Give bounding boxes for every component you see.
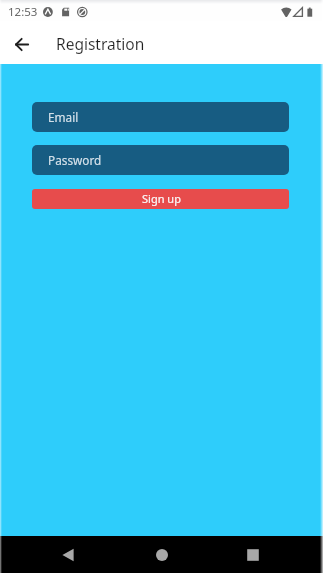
button[interactable]: Home	[146, 539, 178, 571]
staticText: Registration	[56, 33, 145, 54]
staticText: Email	[48, 109, 79, 125]
button[interactable]: Password	[32, 145, 289, 175]
button[interactable]: Sign up	[32, 189, 289, 209]
button[interactable]: Recents	[237, 539, 269, 571]
button[interactable]: Email	[32, 102, 289, 132]
staticText: Password	[48, 152, 102, 168]
button[interactable]: Back	[52, 539, 84, 571]
staticText: 12:53	[8, 4, 38, 20]
staticText: Sign up	[142, 191, 181, 206]
button[interactable]: Back	[8, 31, 35, 58]
